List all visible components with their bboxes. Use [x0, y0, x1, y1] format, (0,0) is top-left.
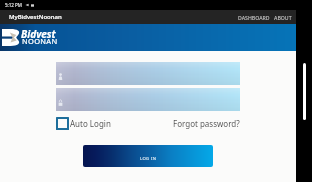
other: Password — [58, 99, 63, 106]
staticText: NOONAN — [22, 36, 58, 46]
staticText: Auto Login — [70, 118, 111, 129]
button[interactable]: DASHBOARD — [236, 12, 272, 23]
other: Username — [58, 73, 63, 80]
staticText: DASHBOARD — [238, 14, 270, 21]
staticText: LOG IN — [140, 156, 157, 162]
button[interactable]: Forgot password? — [173, 118, 240, 129]
button[interactable]: Username — [56, 62, 240, 85]
staticText: Forgot password? — [173, 118, 240, 129]
other: Bidvest Noonan logo — [2, 29, 19, 46]
staticText: Bidvest — [21, 27, 56, 41]
button[interactable]: ABOUT — [272, 12, 294, 23]
button[interactable]: Auto Login — [56, 117, 110, 130]
staticText: 5:12 PM — [5, 2, 22, 8]
staticText: ABOUT — [274, 14, 292, 21]
button[interactable]: Password — [56, 88, 240, 111]
staticText: MyBidvestNoonan — [9, 13, 62, 21]
button[interactable]: LOG IN — [83, 145, 213, 167]
